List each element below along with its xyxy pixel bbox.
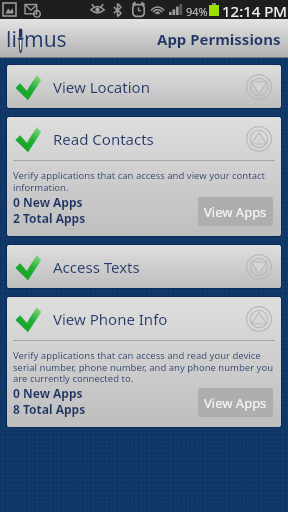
button[interactable]: View Apps bbox=[198, 388, 273, 417]
staticText: 2 Total Apps bbox=[13, 210, 86, 226]
staticText: View Apps bbox=[204, 394, 267, 412]
staticText: 12:14 PM bbox=[222, 1, 287, 20]
staticText: View Phone Info bbox=[53, 309, 246, 329]
staticText: App Permissions bbox=[157, 29, 281, 49]
staticText: View Apps bbox=[204, 203, 267, 221]
button[interactable]: Expand bbox=[246, 74, 272, 100]
staticText: 0 New Apps bbox=[13, 194, 83, 210]
button[interactable]: Collapse bbox=[246, 306, 272, 332]
staticText: 0 New Apps bbox=[13, 385, 83, 401]
button[interactable]: View Location bbox=[7, 65, 281, 108]
staticText: li bbox=[6, 25, 17, 54]
staticText: Verify applications that can access and … bbox=[13, 349, 275, 384]
button[interactable]: Access Texts bbox=[7, 245, 281, 288]
button[interactable]: View Phone Info bbox=[7, 297, 281, 427]
staticText: mus bbox=[24, 25, 67, 54]
staticText: Verify applications that can access and … bbox=[13, 169, 275, 193]
staticText: 8 Total Apps bbox=[13, 401, 86, 417]
staticText: Read Contacts bbox=[53, 129, 246, 149]
button[interactable]: Expand bbox=[246, 254, 272, 280]
button[interactable]: Read Contacts bbox=[7, 117, 281, 236]
button[interactable]: View Apps bbox=[198, 197, 273, 226]
staticText: View Location bbox=[53, 77, 246, 97]
staticText: Access Texts bbox=[53, 257, 246, 277]
button[interactable]: Collapse bbox=[246, 126, 272, 152]
staticText: 94% bbox=[186, 4, 208, 19]
